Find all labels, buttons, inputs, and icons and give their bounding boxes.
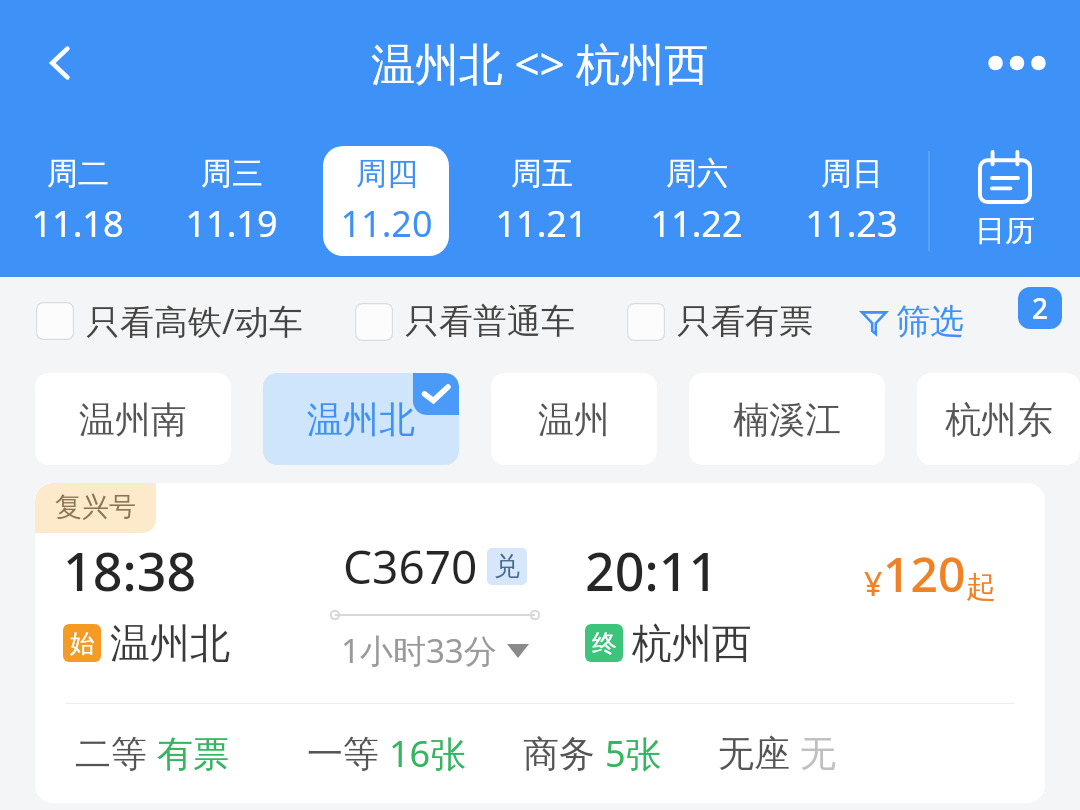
staticText: 周五 [511,154,573,193]
staticText: ¥ [864,562,883,606]
button[interactable]: 周二 [0,125,154,277]
staticText: 有票 [157,731,229,776]
staticText: 16张 [389,729,467,778]
button[interactable]: 只看普通车 [355,300,575,343]
button[interactable]: Calendar [930,125,1080,277]
staticText: 11.21 [495,199,588,248]
staticText: 11.23 [805,199,898,248]
staticText: 11.22 [650,199,743,248]
staticText: 商务 [523,731,595,776]
staticText: 5张 [605,729,662,778]
staticText: 120 [883,541,966,606]
button[interactable]: 温州南 [35,373,231,465]
staticText: 只看高铁/动车 [86,298,303,344]
staticText: C3670 [343,535,478,598]
button[interactable]: 周日 [773,125,928,277]
staticText: 楠溪江 [733,397,841,442]
button[interactable]: Back [30,32,92,94]
staticText: 杭州东 [945,397,1053,442]
staticText: 始 [70,628,95,659]
button[interactable]: 筛选 [859,300,968,343]
staticText: 温州南 [79,397,187,442]
staticText: 11.19 [185,199,278,248]
staticText: 18:38 [63,535,197,606]
staticText: 周二 [47,154,109,193]
button[interactable]: 只看有票 [627,300,813,343]
staticText: 二等 [75,731,147,776]
staticText: 20:11 [585,535,719,606]
staticText: 复兴号 [55,490,136,524]
staticText: 无座 [718,731,790,776]
staticText: 只看普通车 [405,300,575,343]
button[interactable]: 楠溪江 [689,373,885,465]
button[interactable]: 周三 [154,125,308,277]
button[interactable]: 复兴号 [35,483,1045,803]
staticText: 周三 [201,154,263,193]
button[interactable]: 周六 [618,125,773,277]
staticText: 11.20 [340,199,433,248]
staticText: 温州北 <> 杭州西 [371,33,709,93]
staticText: 无 [800,731,836,776]
staticText: 温州北 [307,397,415,442]
staticText: 周六 [666,154,728,193]
staticText: 筛选 [896,300,964,343]
button[interactable]: 周五 [463,125,618,277]
staticText: 11.18 [31,199,124,248]
button[interactable]: 杭州东 [917,373,1080,465]
staticText: 一等 [307,731,379,776]
button[interactable]: 只看高铁/动车 [36,298,303,344]
button[interactable]: 周四 [308,125,463,277]
staticText: 终 [592,628,617,659]
staticText: 杭州西 [632,618,752,668]
staticText: 2 [1032,289,1049,327]
staticText: 温州 [538,397,610,442]
button[interactable]: 温州 [491,373,657,465]
staticText: 日历 [975,212,1035,250]
staticText: 温州北 [110,618,230,668]
staticText: 周日 [821,154,883,193]
button[interactable]: 温州北 [263,373,459,465]
staticText: 起 [966,568,996,606]
button[interactable]: More options [982,28,1052,98]
staticText: 只看有票 [677,300,813,343]
staticText: 周四 [356,154,418,193]
staticText: 兑 [494,550,520,583]
staticText: 1小时33分 [341,628,497,673]
